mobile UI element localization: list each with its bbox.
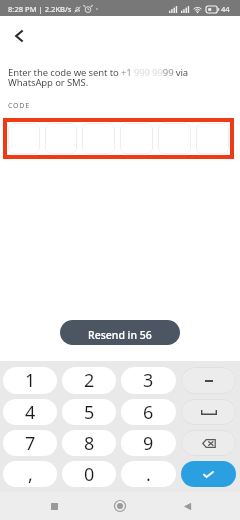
button[interactable] xyxy=(196,123,229,154)
button[interactable]: Recents xyxy=(41,493,67,519)
button[interactable]: Home xyxy=(107,493,133,519)
staticText: 6 xyxy=(143,400,154,425)
staticText: CODE xyxy=(8,101,30,111)
button[interactable] xyxy=(158,123,191,154)
staticText: , xyxy=(28,462,33,487)
button[interactable]: , xyxy=(3,461,57,487)
staticText: . xyxy=(146,462,151,487)
button[interactable]: 7 xyxy=(3,430,57,456)
staticText: 0 xyxy=(84,462,95,487)
staticText: 9 xyxy=(143,431,154,456)
button[interactable]: 1 xyxy=(3,367,57,394)
button[interactable] xyxy=(120,123,153,154)
staticText: 8 xyxy=(84,431,95,456)
button[interactable]: Backspace xyxy=(181,430,236,456)
button[interactable]: 6 xyxy=(121,399,176,425)
staticText: Enter the code we sent to +1 999 9999 vi… xyxy=(8,66,189,89)
button[interactable]: 3 xyxy=(121,367,176,394)
button[interactable]: 2 xyxy=(62,367,116,394)
staticText: Resend in 56 xyxy=(88,328,152,342)
button[interactable]: Enter xyxy=(181,461,236,487)
button[interactable]: 5 xyxy=(62,399,116,425)
button[interactable]: Dash xyxy=(181,367,236,394)
button[interactable]: 4 xyxy=(3,399,57,425)
button[interactable] xyxy=(82,123,115,154)
button[interactable]: 8 xyxy=(62,430,116,456)
staticText: 8:28 PM | 2.2KB/s xyxy=(8,4,72,14)
button[interactable] xyxy=(8,123,40,154)
staticText: 3 xyxy=(143,368,154,393)
staticText: 5 xyxy=(84,400,95,425)
button[interactable]: Back xyxy=(7,24,31,48)
button[interactable]: Resend in 56 xyxy=(60,320,180,345)
button[interactable]: 9 xyxy=(121,430,176,456)
staticText: 4 xyxy=(25,400,36,425)
staticText: 2 xyxy=(84,368,95,393)
button[interactable]: . xyxy=(121,461,176,487)
staticText: 1 xyxy=(25,368,36,393)
button[interactable]: Back xyxy=(174,493,200,519)
button[interactable] xyxy=(45,123,77,154)
button[interactable]: Space xyxy=(181,399,236,425)
button[interactable]: 0 xyxy=(62,461,116,487)
staticText: 44 xyxy=(221,4,230,14)
staticText: 7 xyxy=(25,431,36,456)
